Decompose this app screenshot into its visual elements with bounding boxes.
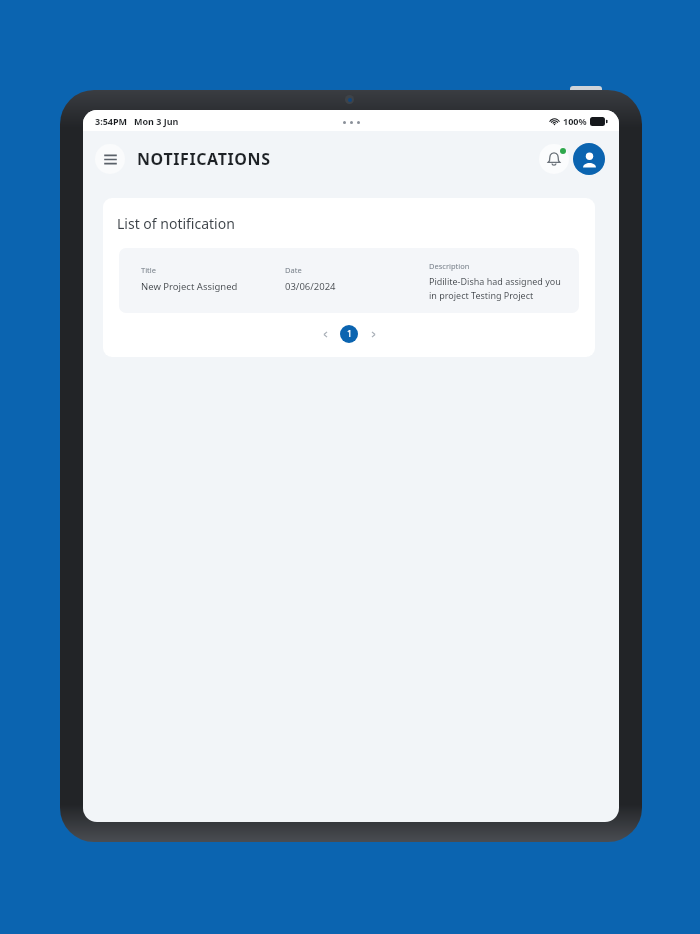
staticText: in project Testing Project — [429, 289, 534, 301]
staticText: Date — [285, 265, 302, 275]
staticText: Title — [141, 265, 156, 275]
button[interactable]: 1 — [340, 325, 358, 343]
staticText: 100% — [563, 115, 587, 127]
staticText: NOTIFICATIONS — [137, 148, 271, 170]
button[interactable]: Title — [119, 248, 579, 313]
button[interactable]: Notifications — [539, 144, 569, 174]
staticText: New Project Assigned — [141, 280, 238, 293]
button[interactable]: Previous page — [316, 325, 334, 343]
button[interactable]: Next page — [364, 325, 382, 343]
staticText: Mon 3 Jun — [134, 115, 179, 127]
staticText: 1 — [347, 328, 352, 340]
staticText: 03/06/2024 — [285, 280, 336, 293]
staticText: Description — [429, 261, 470, 271]
button[interactable]: Profile — [573, 143, 605, 175]
staticText: Pidilite-Disha had assigned you — [429, 275, 561, 287]
staticText: List of notification — [117, 214, 235, 233]
button[interactable]: Open navigation menu — [95, 144, 125, 174]
staticText: 3:54PM — [95, 115, 128, 127]
